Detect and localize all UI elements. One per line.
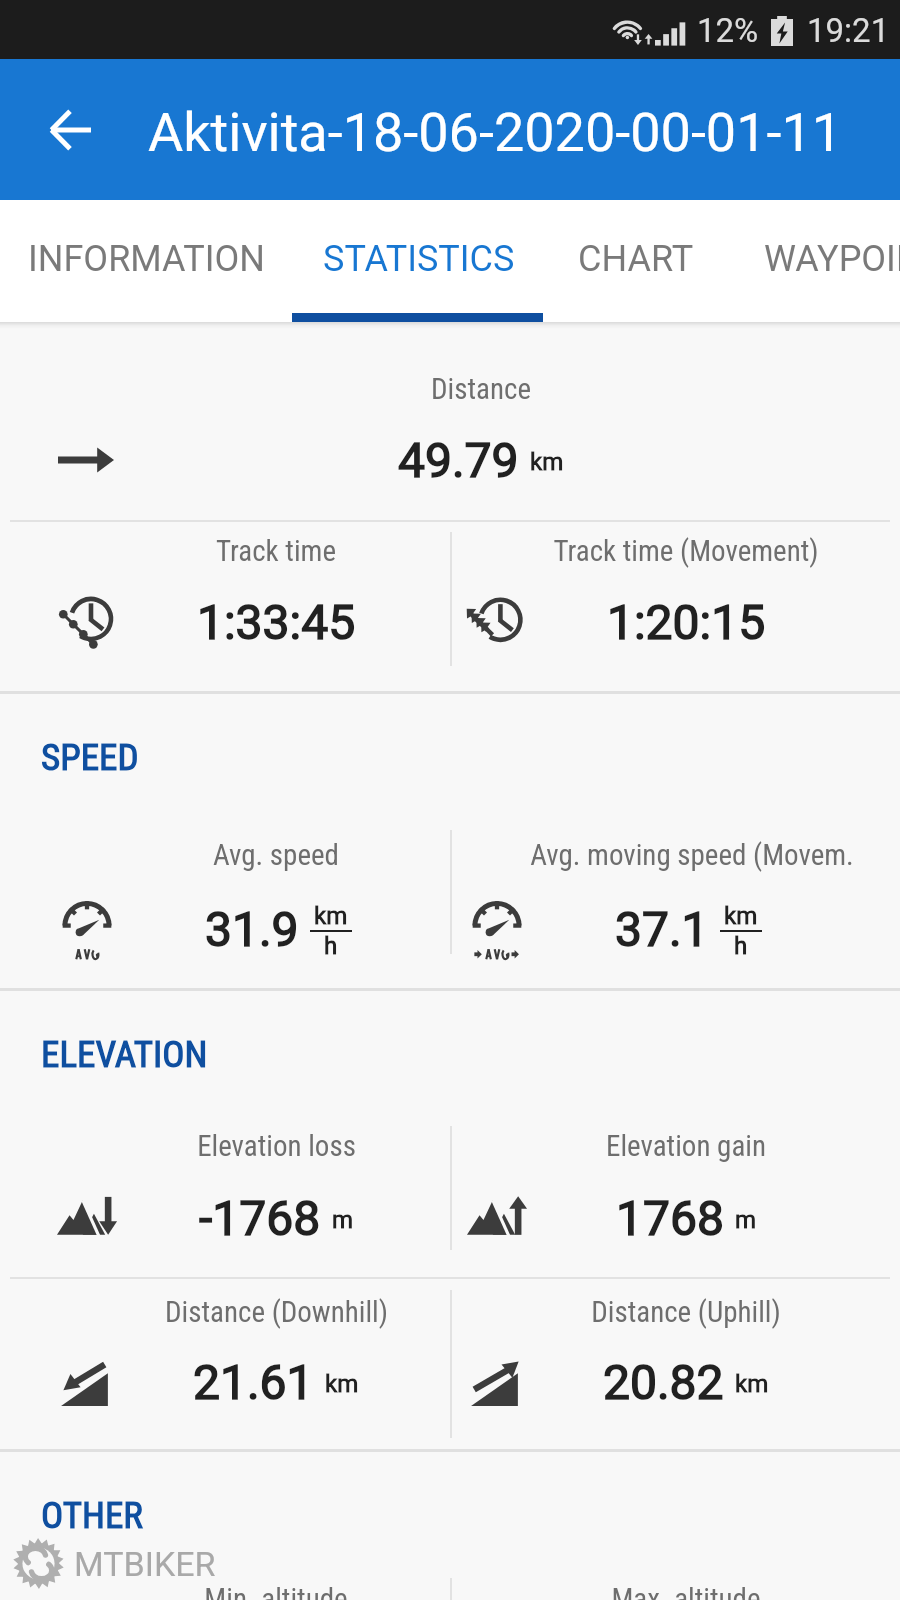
button[interactable]: INFORMATION <box>0 200 294 322</box>
staticText: 21.61 <box>193 1354 314 1410</box>
staticText: Min. altitude <box>204 1582 348 1600</box>
staticText: Avg. moving speed (Movem. <box>530 838 854 872</box>
staticText: Elevation gain <box>606 1129 766 1163</box>
staticText: m <box>735 1206 757 1234</box>
staticText: 49.79 <box>398 432 519 488</box>
staticText: ELEVATION <box>41 1033 208 1076</box>
staticText: Avg. speed <box>213 838 339 872</box>
staticText: Aktivita-18-06-2020-00-01-11 <box>148 101 843 164</box>
staticText: Distance (Downhill) <box>165 1295 388 1329</box>
staticText: Track time (Movement) <box>553 534 819 568</box>
staticText: 31.9 <box>205 901 299 957</box>
staticText: Max. altitude <box>611 1582 761 1600</box>
staticText: m <box>332 1206 354 1234</box>
button[interactable]: CHART <box>543 200 729 322</box>
staticText: km <box>314 902 348 930</box>
staticText: -1768 <box>199 1190 321 1246</box>
staticText: km <box>325 1370 359 1398</box>
button[interactable]: WAYPOINTS <box>729 200 900 322</box>
staticText: Distance (Uphill) <box>591 1295 781 1329</box>
staticText: 1768 <box>616 1190 724 1246</box>
staticText: OTHER <box>41 1494 143 1537</box>
staticText: 1:33:45 <box>197 594 356 650</box>
staticText: Distance <box>431 372 531 406</box>
staticText: 19:21 <box>807 11 890 50</box>
staticText: 37.1 <box>615 901 709 957</box>
staticText: MTBIKER <box>74 1544 216 1584</box>
staticText: 20.82 <box>603 1354 724 1410</box>
button[interactable]: Back <box>22 82 118 178</box>
staticText: km <box>735 1370 769 1398</box>
staticText: Track time <box>216 534 336 568</box>
staticText: Elevation loss <box>197 1129 356 1163</box>
staticText: SPEED <box>41 736 139 779</box>
staticText: CHART <box>578 238 694 280</box>
staticText: km <box>530 448 564 476</box>
staticText: km <box>724 902 758 930</box>
staticText: INFORMATION <box>28 238 266 280</box>
button[interactable]: STATISTICS <box>294 200 543 322</box>
button[interactable]: Distance <box>0 322 900 520</box>
staticText: h <box>734 932 748 960</box>
staticText: STATISTICS <box>323 238 515 280</box>
staticText: h <box>324 932 338 960</box>
staticText: WAYPOINTS <box>764 238 900 280</box>
staticText: 12% <box>697 11 759 50</box>
staticText: 1:20:15 <box>607 594 766 650</box>
